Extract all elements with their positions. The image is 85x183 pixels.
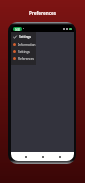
staticText: Settings [19,35,32,39]
staticText: Information [18,43,36,47]
button[interactable]: Settings [11,48,36,55]
button[interactable]: Information [11,41,36,48]
staticText: 9:30 [15,28,20,31]
button[interactable]: Home [40,154,45,159]
button[interactable]: Settings [11,32,36,41]
staticText: Preferences [0,10,85,16]
staticText: References [18,57,35,61]
button[interactable]: Recent apps [57,154,62,159]
staticText: Settings [18,50,30,54]
button[interactable]: Back [23,154,28,159]
button[interactable]: References [11,55,36,62]
